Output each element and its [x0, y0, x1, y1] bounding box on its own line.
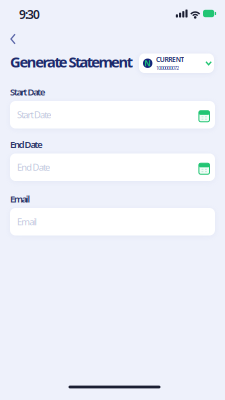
staticText: Email	[10, 193, 31, 205]
button[interactable]: Select account: CURRENT 1000000072	[139, 53, 214, 73]
staticText: Start Date	[17, 109, 51, 121]
button[interactable]: Back	[2, 28, 24, 50]
staticText: 9:30	[19, 6, 40, 22]
button[interactable]: Start Date	[10, 101, 215, 128]
staticText: CURRENT	[156, 55, 184, 64]
staticText: Email	[17, 216, 37, 228]
staticText: End Date	[10, 138, 42, 151]
button[interactable]: End Date	[10, 153, 215, 181]
button[interactable]: Email	[10, 208, 215, 235]
staticText: Generate Statement	[10, 52, 133, 71]
staticText: Start Date	[10, 86, 45, 98]
staticText: End Date	[17, 161, 50, 173]
staticText: N	[144, 58, 151, 68]
staticText: 1000000072	[156, 64, 179, 71]
